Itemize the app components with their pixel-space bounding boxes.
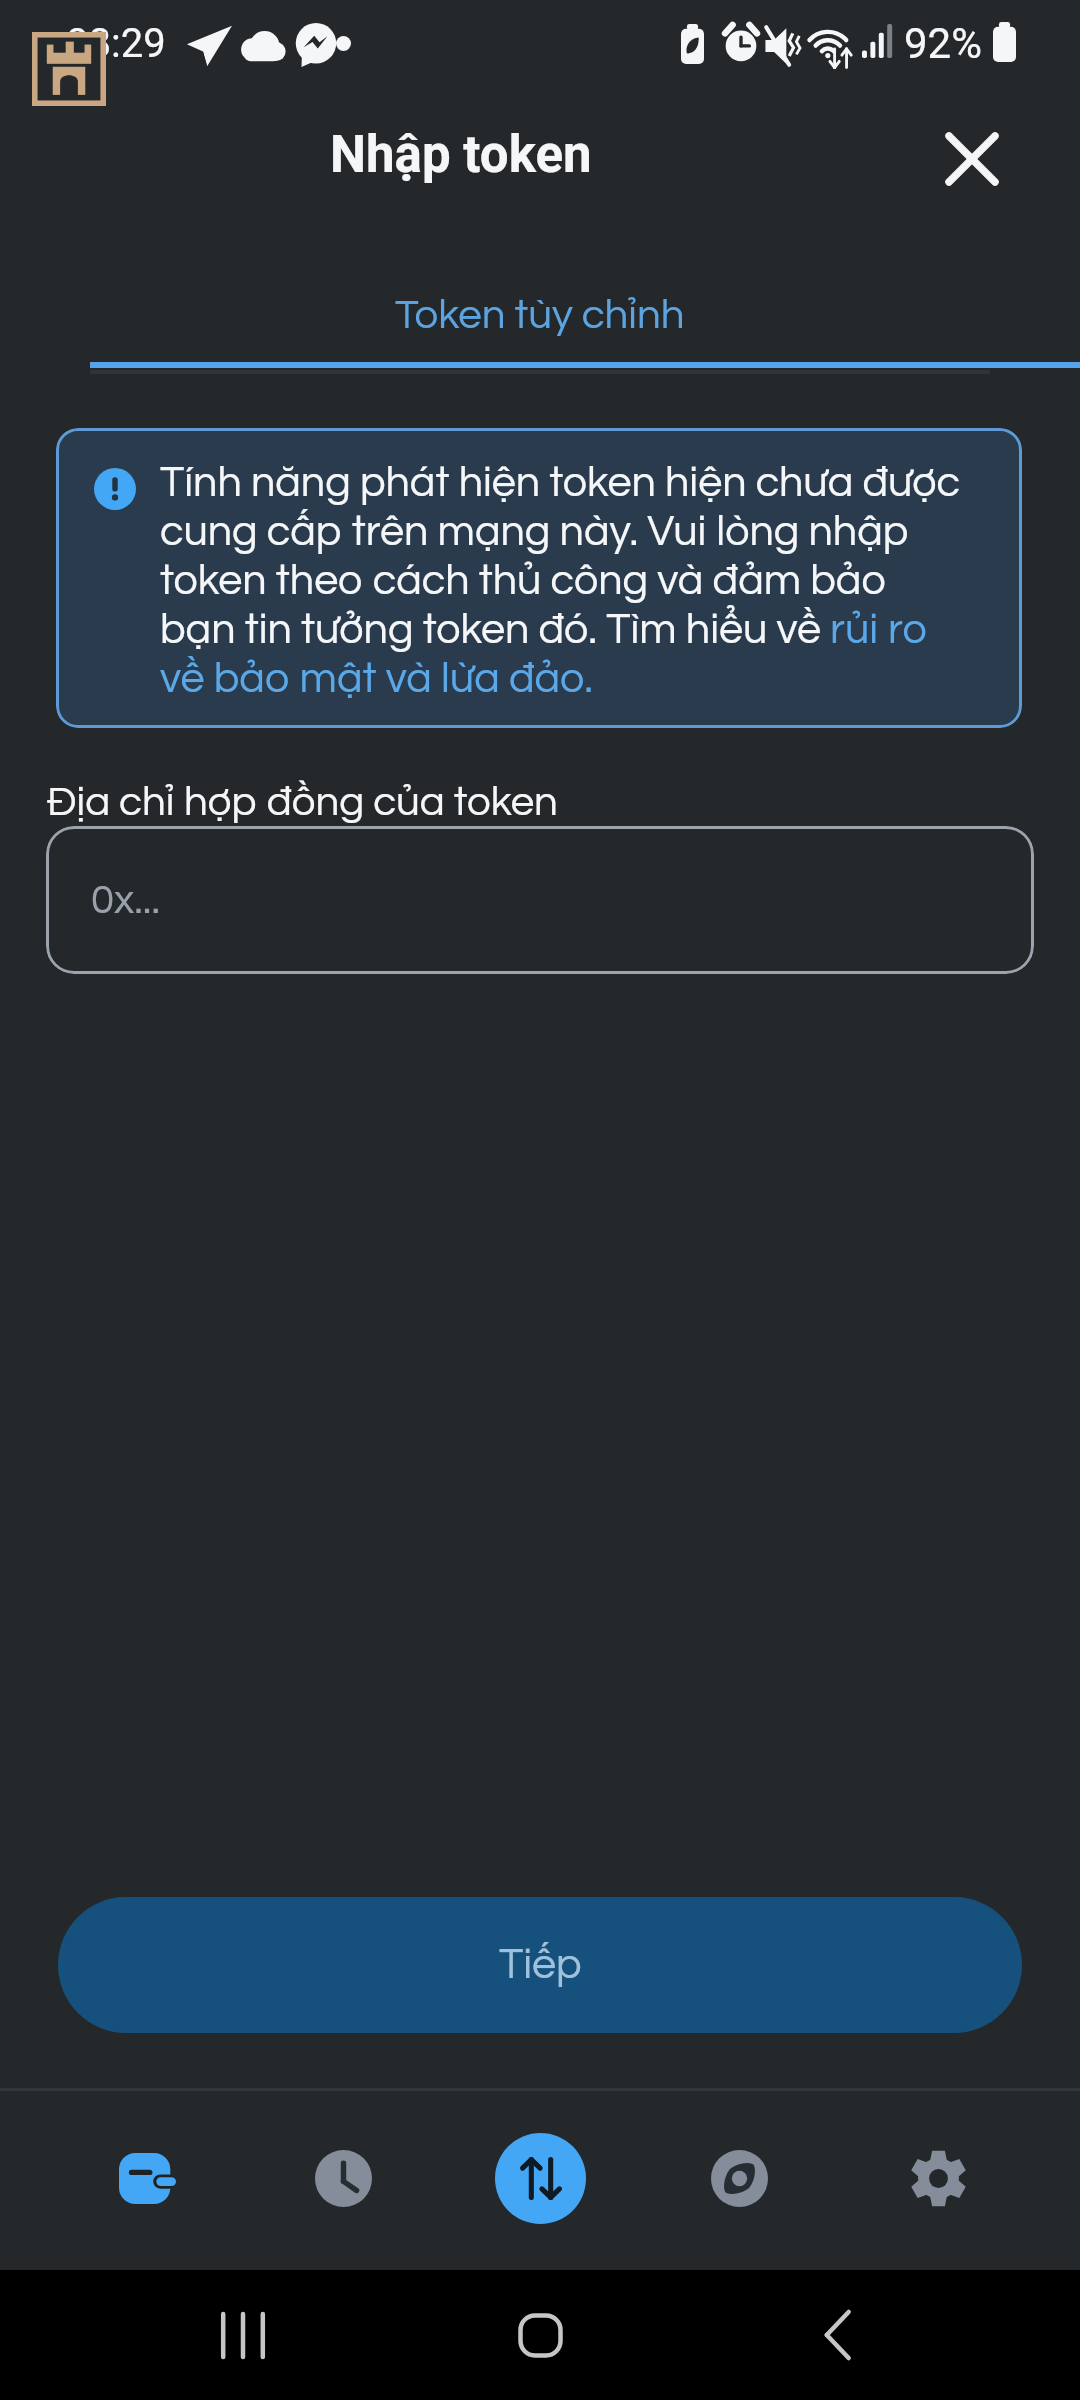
staticText: Nhập token — [330, 125, 592, 185]
staticText: Tiếp — [499, 1943, 582, 1987]
staticText: Địa chỉ hợp đồng của token — [47, 781, 558, 824]
button[interactable]: Settings — [860, 2100, 1016, 2256]
button[interactable]: Browser — [661, 2100, 817, 2256]
staticText: Token tùy chỉnh — [395, 294, 685, 337]
button[interactable]: 0x... — [46, 826, 1034, 974]
button[interactable]: Tiếp — [58, 1897, 1022, 2033]
button[interactable]: Recent apps — [188, 2280, 298, 2390]
button[interactable]: Token tùy chỉnh — [0, 224, 1080, 362]
button[interactable]: Home — [485, 2280, 595, 2390]
staticText: 08:29 — [66, 20, 166, 67]
staticText: 92% — [904, 19, 982, 68]
staticText: 0x... — [91, 879, 160, 922]
button[interactable]: Activity — [265, 2100, 421, 2256]
button[interactable]: Close — [930, 117, 1014, 201]
button[interactable]: Swap — [462, 2100, 618, 2256]
button[interactable]: Wallet — [69, 2100, 225, 2256]
staticText: Tính năng phát hiện token hiện chưa được… — [160, 461, 966, 701]
button[interactable]: Back — [783, 2280, 893, 2390]
